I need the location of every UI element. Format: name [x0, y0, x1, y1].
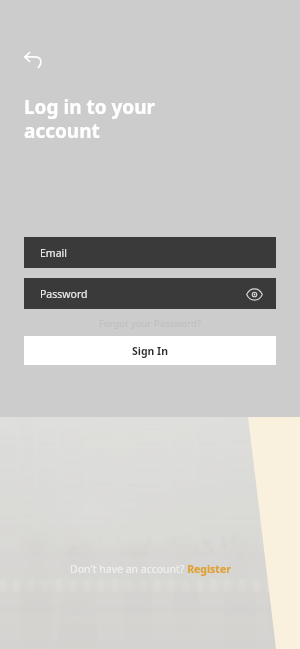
staticText: Email: [40, 246, 67, 260]
staticText: Don't have an account? Register: [70, 562, 231, 576]
button[interactable]: Sign In: [24, 336, 276, 365]
button[interactable]: Don't have an account? Register: [64, 559, 237, 579]
staticText: Forgot your Password?: [99, 317, 201, 330]
button[interactable]: Email: [24, 237, 276, 268]
staticText: Sign In: [132, 344, 169, 358]
button[interactable]: Back: [18, 44, 50, 76]
button[interactable]: Forgot your Password?: [93, 315, 207, 332]
button[interactable]: Show password: [242, 282, 266, 306]
button[interactable]: Password: [24, 278, 276, 309]
staticText: Log in to your account: [24, 94, 156, 143]
staticText: Password: [40, 287, 88, 301]
